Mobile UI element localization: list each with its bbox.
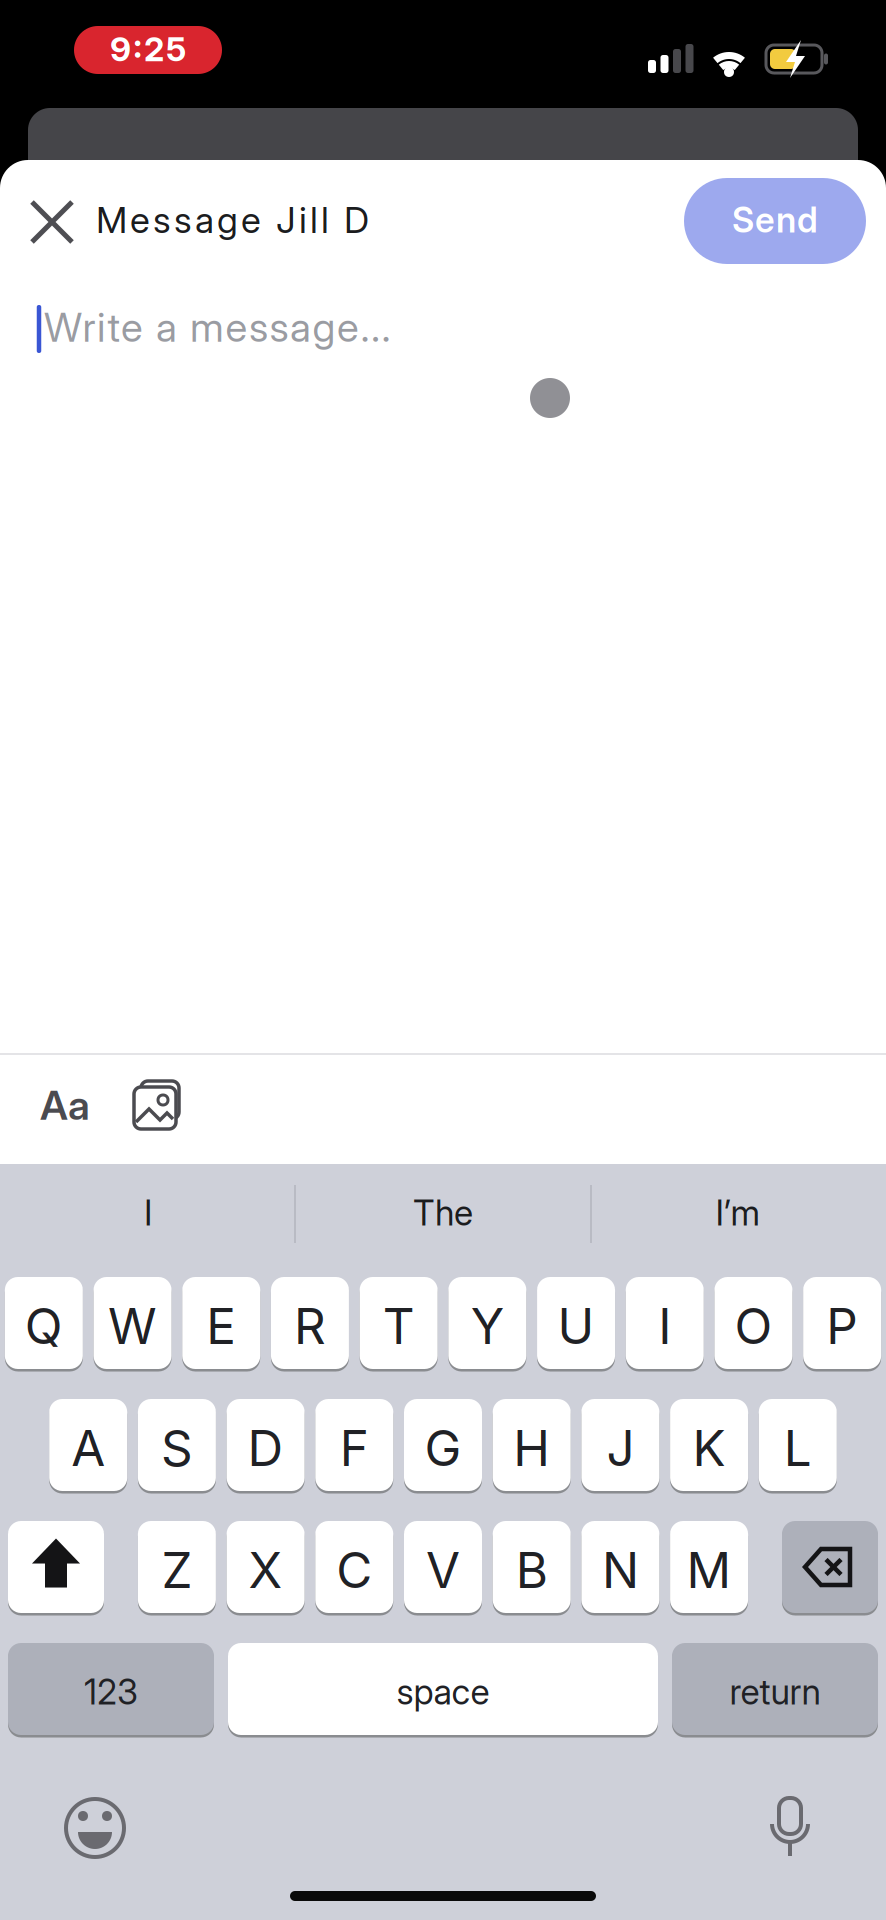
staticText: O <box>734 1296 772 1356</box>
staticText: P <box>826 1296 858 1356</box>
staticText: W <box>108 1296 157 1356</box>
staticText: Message Jill D <box>96 198 369 242</box>
staticText: I’m <box>715 1192 760 1234</box>
staticText: R <box>294 1296 326 1356</box>
staticText: S <box>161 1418 193 1478</box>
staticText: F <box>340 1418 369 1478</box>
staticText: B <box>516 1540 548 1600</box>
staticText: G <box>424 1418 461 1478</box>
staticText: Aa <box>40 1081 90 1129</box>
staticText: 9:25 <box>110 29 186 69</box>
staticText: Send <box>732 199 818 241</box>
staticText: X <box>249 1540 283 1600</box>
staticText: 123 <box>84 1671 138 1713</box>
staticText: A <box>71 1418 105 1478</box>
staticText: I <box>144 1192 152 1234</box>
staticText: The <box>413 1192 473 1234</box>
staticText: K <box>693 1418 726 1478</box>
staticText: U <box>558 1296 595 1356</box>
staticText: E <box>206 1296 236 1356</box>
staticText: Write a message... <box>44 303 390 351</box>
staticText: T <box>383 1296 415 1356</box>
staticText: I <box>658 1296 671 1356</box>
staticText: J <box>606 1418 634 1478</box>
staticText: D <box>248 1418 284 1478</box>
staticText: Y <box>471 1296 504 1356</box>
staticText: return <box>729 1671 820 1713</box>
staticText: N <box>602 1540 639 1600</box>
staticText: Q <box>25 1296 63 1356</box>
staticText: M <box>687 1540 732 1600</box>
staticText: H <box>513 1418 550 1478</box>
staticText: C <box>336 1540 372 1600</box>
staticText: L <box>784 1418 812 1478</box>
staticText: Z <box>161 1540 192 1600</box>
staticText: space <box>396 1671 489 1713</box>
staticText: V <box>426 1540 460 1600</box>
